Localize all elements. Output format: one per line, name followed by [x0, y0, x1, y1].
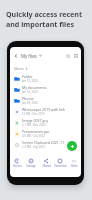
staticText: 12 MB · Dec 2019 — [22, 112, 45, 116]
button[interactable]: Search — [64, 52, 72, 60]
staticText: Whitepaper 2019 with link — [22, 107, 65, 112]
staticText: More — [71, 164, 78, 168]
staticText: Screen Clipboard 2021-11 — [22, 140, 64, 145]
button[interactable]: Whitepaper 2019 with link — [10, 106, 81, 117]
staticText: Shared — [42, 164, 51, 168]
staticText: Quickly access recent — [6, 9, 83, 19]
staticText: Favourites — [54, 164, 67, 168]
staticText: Jan 12, 2023 — [22, 79, 38, 83]
staticText: Image 0037.jpg — [22, 118, 48, 123]
button[interactable]: Favourites — [53, 157, 67, 168]
button[interactable]: Photos — [10, 95, 81, 106]
staticText: 2.1 MB · Nov 2022 — [22, 123, 46, 127]
staticText: Folder — [22, 74, 33, 79]
staticText: 4.5 MB · Oct 2022 — [22, 134, 45, 138]
staticText: Jan 08, 2023 — [22, 101, 38, 105]
button[interactable]: Recent — [10, 157, 24, 168]
button[interactable]: Image 0037.jpg — [10, 117, 81, 128]
button[interactable]: More — [67, 157, 81, 168]
button[interactable]: Create new — [67, 141, 77, 151]
staticText: My documents — [22, 85, 47, 90]
staticText: 1.2 MB · Sep 2021 — [22, 145, 46, 149]
button[interactable]: Folder — [10, 73, 81, 84]
staticText: Name — [14, 66, 24, 71]
staticText: Recent — [13, 164, 22, 168]
staticText: Presentation.ppt — [22, 129, 50, 134]
staticText: Storage — [26, 164, 36, 168]
button[interactable]: Presentation.ppt — [10, 128, 81, 139]
button[interactable]: Shared — [39, 157, 53, 168]
button[interactable]: Screen Clipboard 2021-11 — [10, 139, 81, 150]
button[interactable]: Switch to grid view — [72, 52, 80, 60]
staticText: Photos — [22, 96, 34, 101]
staticText: Jan 10, 2023 — [22, 90, 38, 94]
button[interactable]: My documents — [10, 84, 81, 95]
button[interactable]: Back — [12, 52, 20, 60]
staticText: and important files — [6, 19, 74, 29]
button[interactable]: Storage — [24, 157, 38, 168]
staticText: My files — [21, 53, 37, 59]
